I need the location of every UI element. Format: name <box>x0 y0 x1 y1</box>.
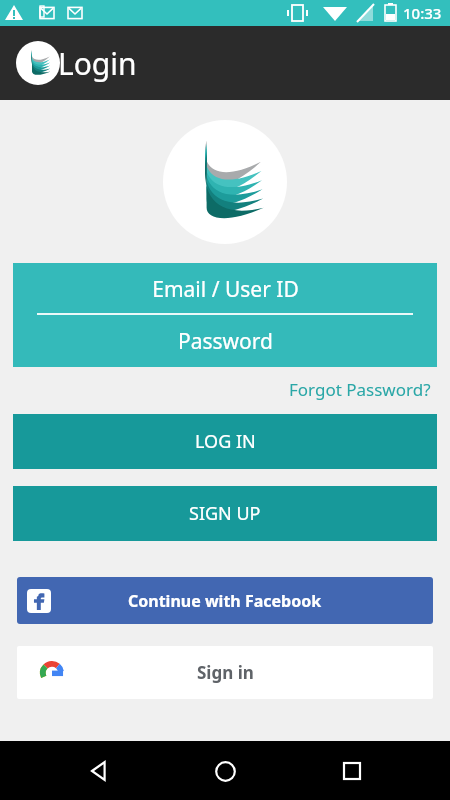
staticText: Sign in <box>197 661 254 684</box>
staticText: 10:33 <box>403 3 442 23</box>
button[interactable]: Password <box>13 315 437 367</box>
button[interactable]: Email / User ID <box>13 263 437 315</box>
button[interactable]: Home <box>197 743 253 799</box>
staticText: LOG IN <box>195 429 256 454</box>
button[interactable]: LOG IN <box>13 414 437 469</box>
button[interactable]: Recent apps <box>324 743 380 799</box>
button[interactable]: Back <box>71 743 127 799</box>
button[interactable]: SIGN UP <box>13 486 437 541</box>
staticText: Login <box>58 43 137 84</box>
staticText: SIGN UP <box>189 501 261 526</box>
staticText: Continue with Facebook <box>128 590 322 612</box>
staticText: Password <box>178 327 273 356</box>
staticText: Email / User ID <box>152 275 299 304</box>
button[interactable]: Forgot Password? <box>283 374 437 405</box>
staticText: Forgot Password? <box>289 378 431 401</box>
button[interactable]: Sign in <box>17 646 433 699</box>
button[interactable]: Continue with Facebook <box>17 577 433 624</box>
